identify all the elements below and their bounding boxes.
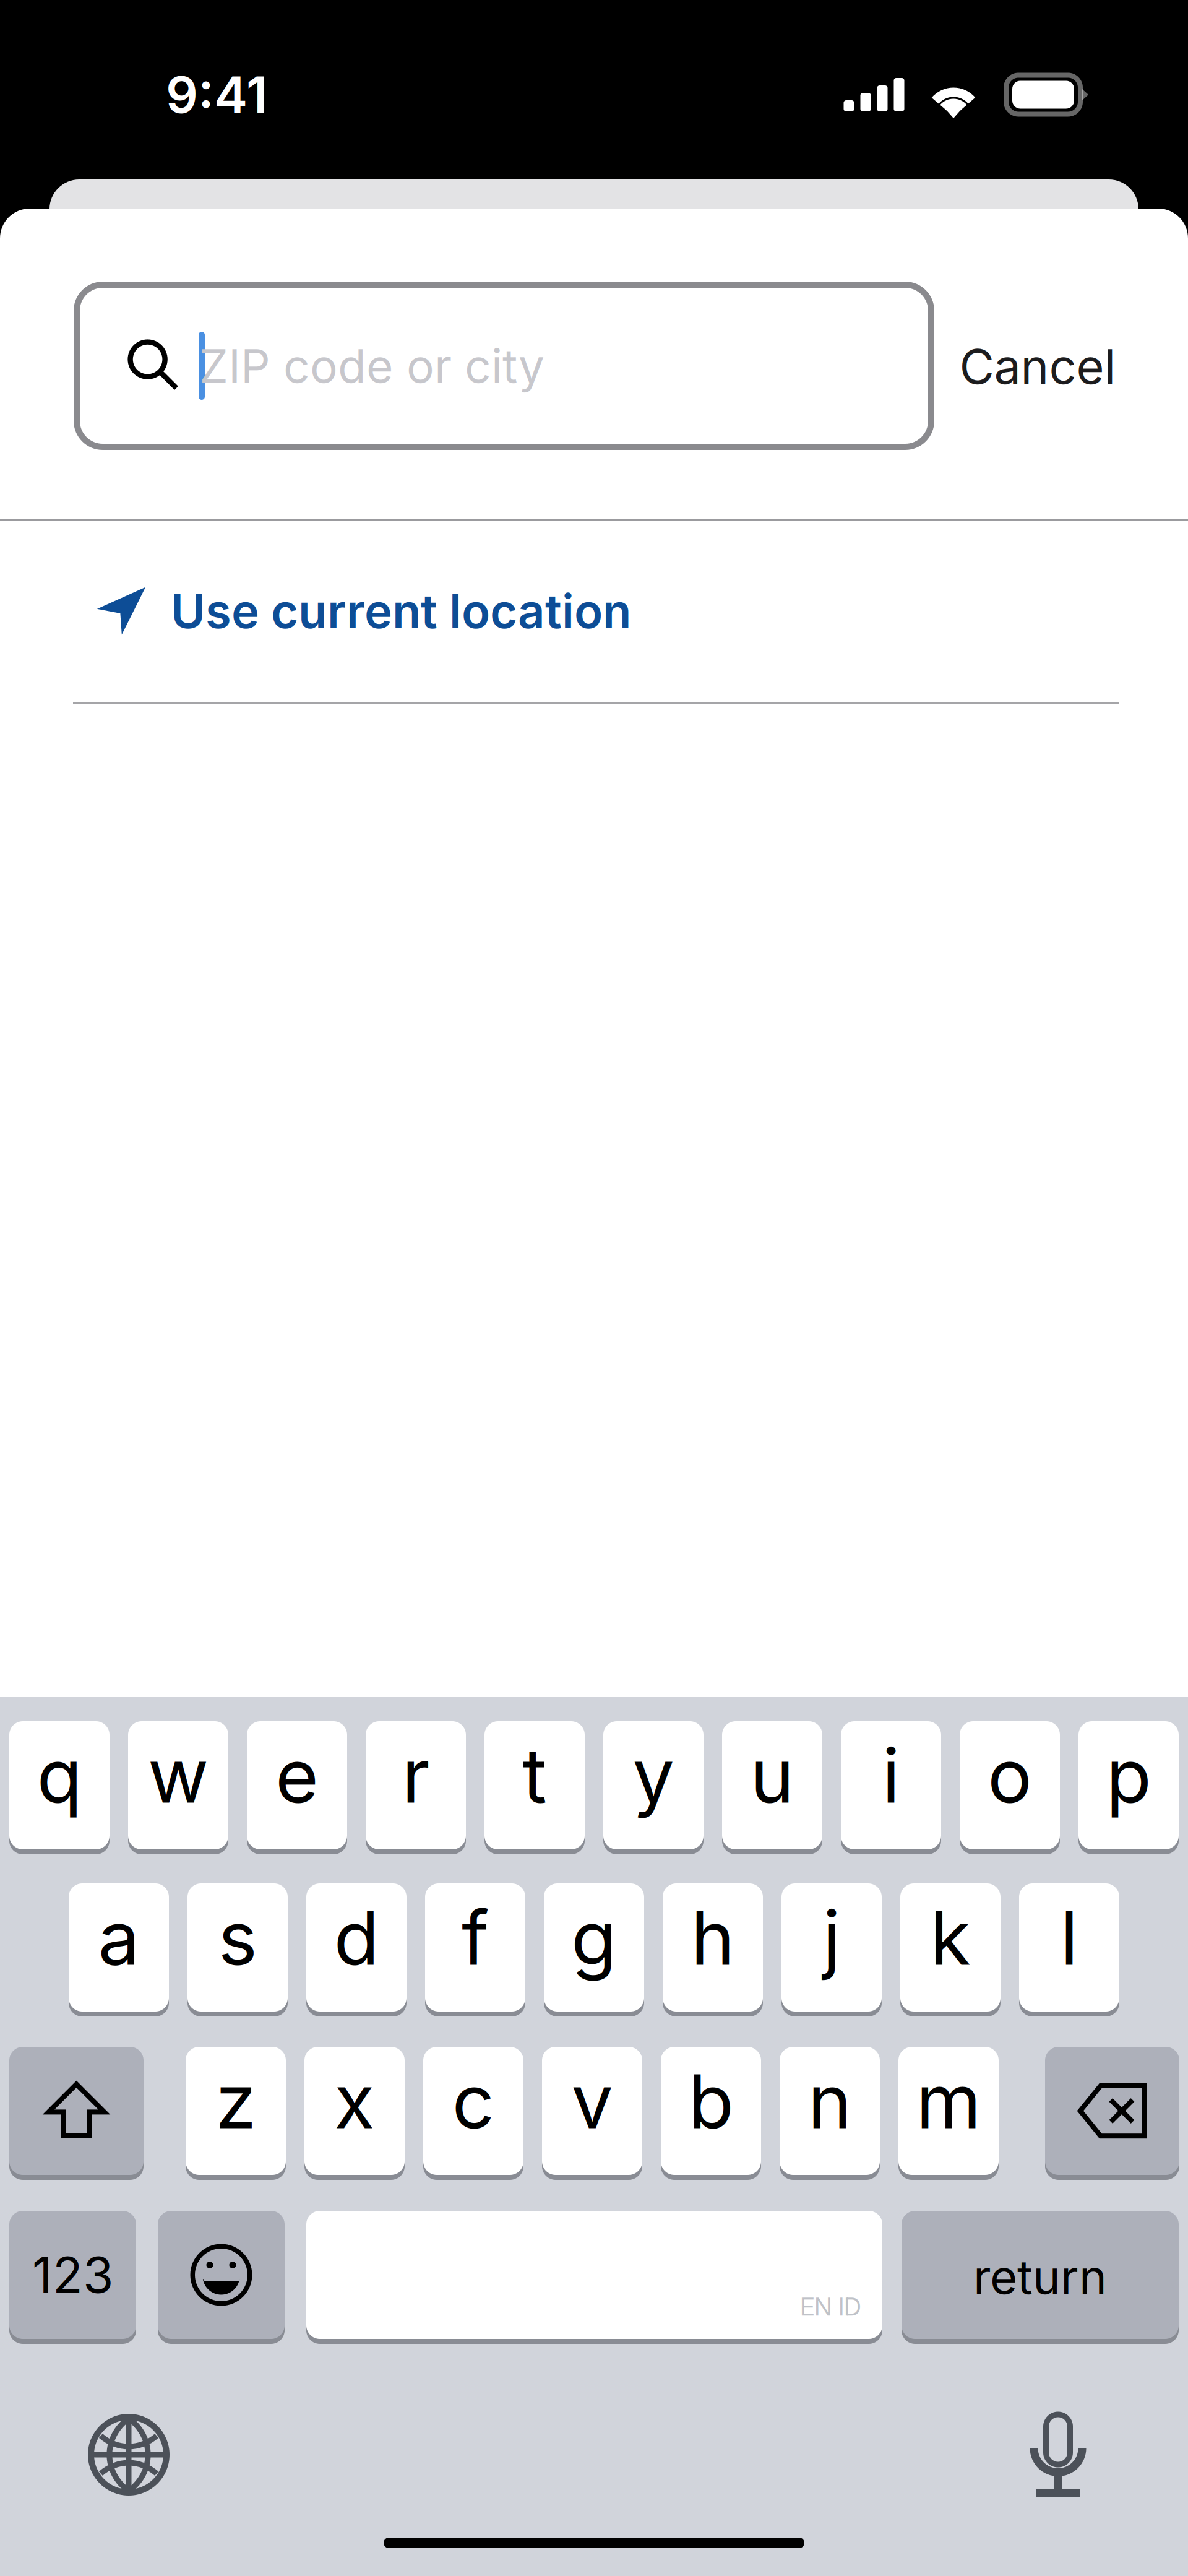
staticText: h (691, 1893, 735, 1983)
staticText: b (688, 2056, 734, 2146)
button[interactable]: Shift (9, 2047, 144, 2175)
button[interactable]: v (542, 2047, 642, 2175)
button[interactable]: q (9, 1721, 110, 1849)
staticText: Use current location (171, 582, 631, 639)
button[interactable]: e (247, 1721, 347, 1849)
staticText: q (37, 1731, 82, 1821)
button[interactable]: k (900, 1883, 1001, 2012)
button[interactable]: l (1019, 1883, 1119, 2012)
staticText: g (571, 1893, 617, 1983)
staticText: r (402, 1731, 430, 1821)
staticText: a (98, 1893, 140, 1983)
button[interactable]: s (187, 1883, 288, 2012)
staticText: u (750, 1731, 794, 1821)
staticText: m (916, 2056, 981, 2146)
button[interactable]: u (722, 1721, 822, 1849)
staticText: x (334, 2056, 375, 2146)
button[interactable]: d (306, 1883, 407, 2012)
staticText: k (930, 1893, 971, 1983)
button[interactable]: f (425, 1883, 525, 2012)
button[interactable]: 123 (9, 2211, 136, 2339)
button[interactable]: h (663, 1883, 763, 2012)
button[interactable]: Cancel (936, 285, 1140, 447)
staticText: p (1106, 1731, 1151, 1821)
button[interactable]: x (304, 2047, 405, 2175)
staticText: i (882, 1731, 900, 1821)
staticText: f (462, 1893, 489, 1983)
button[interactable]: n (780, 2047, 880, 2175)
staticText: 123 (32, 2245, 113, 2305)
staticText: d (334, 1893, 379, 1983)
button[interactable]: y (603, 1721, 704, 1849)
staticText: ZIP code or city (199, 338, 544, 394)
button[interactable]: Use current location (0, 519, 1188, 702)
button[interactable]: w (128, 1721, 228, 1849)
button[interactable]: c (423, 2047, 523, 2175)
button[interactable]: Emoji (158, 2211, 285, 2339)
staticText: w (148, 1731, 209, 1821)
staticText: z (215, 2056, 256, 2146)
staticText: v (571, 2056, 613, 2146)
button[interactable]: r (366, 1721, 466, 1849)
button[interactable]: b (661, 2047, 761, 2175)
button[interactable]: g (544, 1883, 644, 2012)
button[interactable]: p (1078, 1721, 1179, 1849)
button[interactable]: Delete (1045, 2047, 1179, 2175)
staticText: s (218, 1893, 257, 1983)
button[interactable]: return (902, 2211, 1179, 2339)
button[interactable]: z (186, 2047, 286, 2175)
staticText: l (1060, 1893, 1078, 1983)
staticText: 9:41 (166, 64, 267, 125)
staticText: y (633, 1731, 674, 1821)
staticText: return (973, 2248, 1107, 2305)
button[interactable]: j (781, 1883, 882, 2012)
button[interactable]: Dictation (1002, 2399, 1114, 2510)
staticText: Cancel (959, 337, 1116, 395)
button[interactable]: o (960, 1721, 1060, 1849)
staticText: e (275, 1731, 319, 1821)
button[interactable]: space (306, 2211, 882, 2339)
staticText: j (823, 1893, 841, 1983)
button[interactable]: t (484, 1721, 585, 1849)
staticText: EN ID (800, 2292, 861, 2322)
button[interactable]: i (841, 1721, 941, 1849)
button[interactable]: a (69, 1883, 169, 2012)
button[interactable]: m (898, 2047, 999, 2175)
staticText: n (808, 2056, 852, 2146)
staticText: t (523, 1731, 547, 1821)
staticText: o (988, 1731, 1032, 1821)
button[interactable]: Next keyboard (73, 2399, 184, 2510)
staticText: c (452, 2056, 495, 2146)
